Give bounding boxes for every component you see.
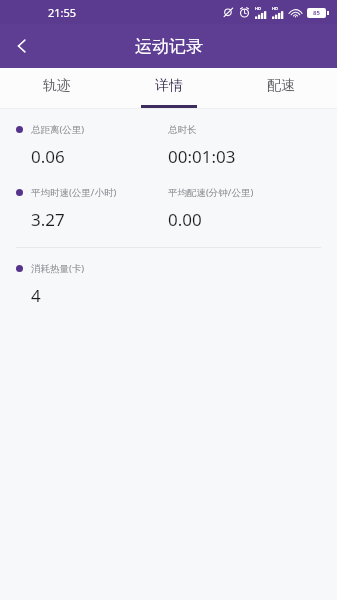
staticText: 0.00 — [168, 208, 202, 231]
button[interactable]: 轨迹 — [0, 68, 113, 108]
staticText: 21:55 — [48, 5, 77, 20]
staticText: 消耗热量(卡) — [31, 262, 85, 275]
staticText: 3.27 — [31, 208, 65, 231]
staticText: 00:01:03 — [168, 145, 236, 168]
staticText: 运动记录 — [135, 36, 203, 57]
button[interactable]: 详情 — [113, 68, 225, 108]
button[interactable]: Back — [0, 24, 44, 68]
staticText: 4 — [31, 284, 41, 307]
button[interactable]: 配速 — [225, 68, 337, 108]
staticText: HD — [255, 6, 261, 11]
staticText: 总距离(公里) — [31, 123, 85, 136]
staticText: 配速 — [267, 77, 295, 95]
staticText: 平均配速(分钟/公里) — [168, 186, 254, 199]
staticText: 0.06 — [31, 145, 65, 168]
staticText: 总时长 — [168, 124, 197, 136]
staticText: HD — [272, 6, 278, 11]
staticText: 85 — [313, 9, 320, 17]
staticText: 轨迹 — [43, 77, 71, 95]
staticText: 详情 — [155, 77, 183, 95]
staticText: 平均时速(公里/小时) — [31, 186, 117, 199]
